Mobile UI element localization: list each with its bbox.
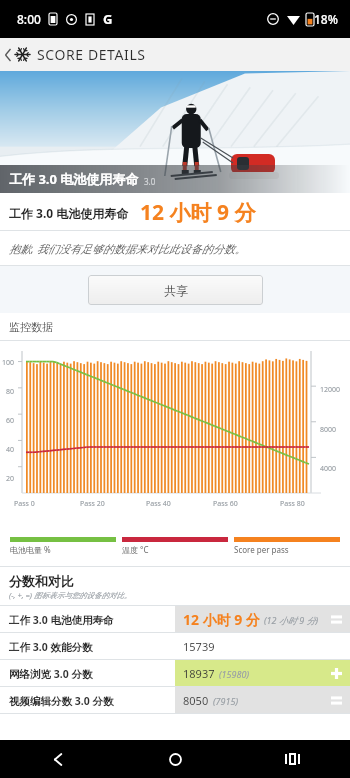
staticText: 工作 3.0 电池使用寿命	[9, 205, 129, 221]
staticText: 监控数据	[9, 320, 53, 334]
staticText: 网络浏览 3.0 分数	[9, 667, 93, 681]
staticText: SCORE DETAILS	[37, 45, 146, 64]
button[interactable]: 工作 3.0 效能分数	[0, 633, 350, 660]
staticText: 40	[6, 445, 15, 455]
staticText: 电池电量 %	[10, 544, 51, 555]
button[interactable]: Recent apps	[271, 740, 313, 778]
staticText: 80	[6, 387, 15, 397]
staticText: Pass 40	[146, 499, 171, 509]
staticText: Score per pass	[234, 544, 289, 555]
button[interactable]: 工作 3.0 电池使用寿命	[0, 606, 350, 633]
staticText: Pass 0	[14, 499, 35, 509]
staticText: Pass 60	[213, 499, 238, 509]
staticText: Pass 80	[280, 499, 305, 509]
staticText: (7915)	[213, 695, 239, 707]
staticText: 12000	[320, 385, 341, 395]
staticText: (15980)	[219, 668, 250, 680]
staticText: 12 小时 9 分	[140, 198, 256, 227]
staticText: 4000	[320, 464, 337, 474]
staticText: 视频编辑分数 3.0 分数	[9, 694, 114, 708]
button[interactable]: Back	[37, 740, 79, 778]
staticText: 20	[6, 474, 15, 484]
staticText: G	[103, 10, 113, 28]
staticText: 分数和对比	[9, 573, 74, 589]
staticText: 温度 °C	[122, 544, 149, 555]
button[interactable]: Home	[154, 740, 196, 778]
staticText: 8:00	[17, 11, 41, 27]
staticText: 15739	[183, 639, 215, 654]
staticText: 8000	[320, 425, 337, 435]
button[interactable]: Back	[0, 38, 350, 71]
staticText: 工作 3.0 电池使用寿命	[9, 170, 139, 188]
button[interactable]: 共享	[88, 275, 263, 305]
staticText: (-, +, =) 图标表示与您的设备的对比。	[9, 590, 132, 600]
staticText: 100	[2, 358, 15, 368]
staticText: 工作 3.0 电池使用寿命	[9, 613, 114, 627]
staticText: 8050	[183, 693, 209, 708]
staticText: 12 小时 9 分	[183, 610, 260, 629]
staticText: 18%	[314, 11, 338, 27]
staticText: 18937	[183, 666, 215, 681]
staticText: 3.0	[144, 176, 156, 187]
staticText: 60	[6, 416, 15, 426]
other: Back	[3, 47, 13, 63]
staticText: 工作 3.0 效能分数	[9, 640, 93, 654]
staticText: 抱歉, 我们没有足够的数据来对比此设备的分数。	[9, 241, 246, 256]
button[interactable]: 视频编辑分数 3.0 分数	[0, 687, 350, 714]
staticText: (12 小时 9 分)	[264, 614, 319, 626]
button[interactable]: 网络浏览 3.0 分数	[0, 660, 350, 687]
staticText: 共享	[164, 283, 188, 298]
staticText: Pass 20	[80, 499, 105, 509]
